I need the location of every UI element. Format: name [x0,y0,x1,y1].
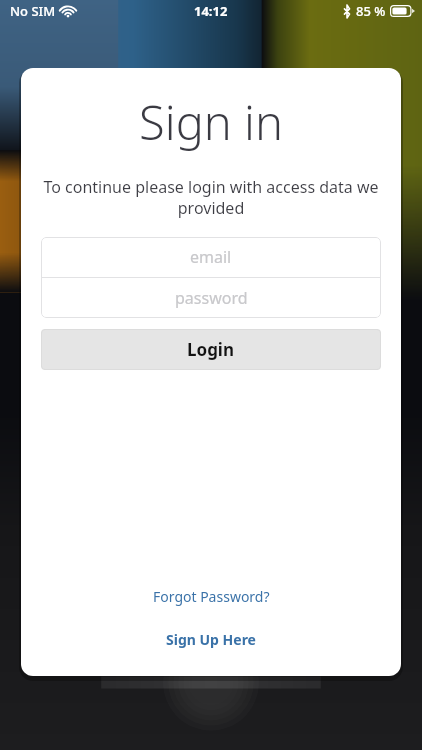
staticText: 85 % [356,2,386,20]
button[interactable]: Forgot Password? [21,582,401,611]
staticText: Forgot Password? [153,587,270,606]
staticText: Sign Up Here [166,630,256,649]
staticText: Sign in [21,90,401,154]
staticText: 14:12 [194,2,228,20]
staticText: No SIM [10,2,56,20]
button[interactable]: Login [41,329,381,370]
button[interactable]: Sign Up Here [21,625,401,654]
staticText: email [190,246,232,268]
button[interactable]: password [41,278,381,318]
button[interactable]: email [41,237,381,277]
staticText: To continue please login with access dat… [39,176,383,219]
staticText: Login [187,338,235,361]
staticText: password [175,287,248,309]
